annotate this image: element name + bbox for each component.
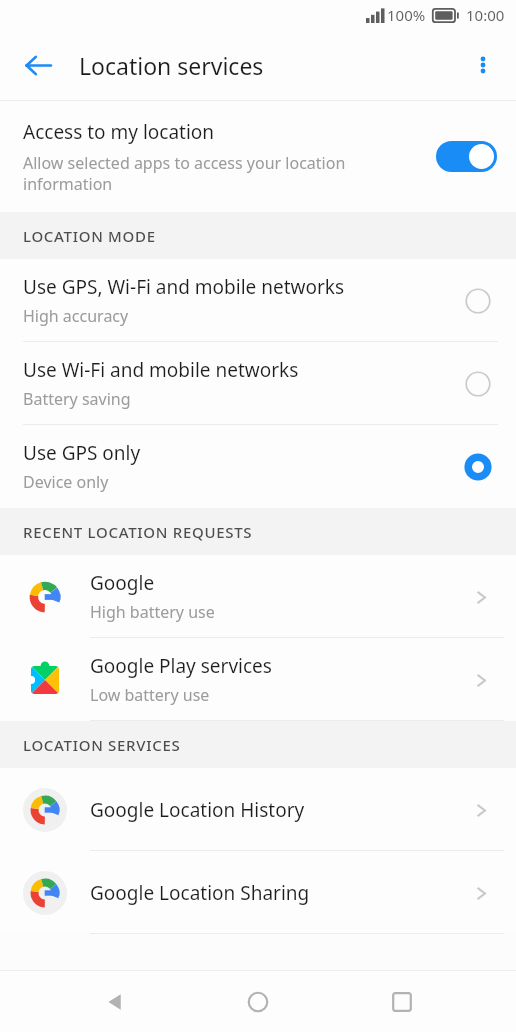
staticText: High accuracy <box>23 305 129 327</box>
staticText: 10:00 <box>466 5 505 25</box>
button[interactable]: Access to my location <box>0 101 516 212</box>
staticText: Google <box>90 570 155 596</box>
staticText: Use Wi-Fi and mobile networks <box>23 357 299 383</box>
staticText: Google Play services <box>90 653 272 679</box>
staticText: Low battery use <box>90 684 210 706</box>
button[interactable]: Recent apps <box>373 973 431 1031</box>
staticText: 100% <box>387 5 426 25</box>
staticText: Google Location History <box>90 797 305 823</box>
staticText: RECENT LOCATION REQUESTS <box>23 522 253 542</box>
button[interactable]: Back <box>13 40 63 90</box>
staticText: Allow selected apps to access your locat… <box>23 152 393 195</box>
staticText: Use GPS, Wi-Fi and mobile networks <box>23 274 345 300</box>
button[interactable]: Home <box>229 973 287 1031</box>
button[interactable]: Google Location History <box>0 768 516 851</box>
staticText: Device only <box>23 471 109 493</box>
staticText: LOCATION MODE <box>23 226 156 246</box>
staticText: High battery use <box>90 601 215 623</box>
staticText: Use GPS only <box>23 440 141 466</box>
staticText: Access to my location <box>23 119 215 145</box>
button[interactable]: Google Play services <box>0 638 516 721</box>
button[interactable]: Access to my location, on <box>436 141 497 172</box>
button[interactable]: Use Wi-Fi and mobile networks <box>0 342 516 425</box>
button[interactable]: Google <box>0 555 516 638</box>
button[interactable]: Use GPS only <box>0 425 516 508</box>
button[interactable]: Use GPS, Wi-Fi and mobile networks <box>0 259 516 342</box>
button[interactable]: More options <box>459 41 507 89</box>
staticText: LOCATION SERVICES <box>23 735 181 755</box>
button[interactable]: Back <box>86 973 144 1031</box>
staticText: Google Location Sharing <box>90 880 310 906</box>
staticText: Location services <box>79 50 264 81</box>
button[interactable]: Google Location Sharing <box>0 851 516 934</box>
staticText: Battery saving <box>23 388 131 410</box>
